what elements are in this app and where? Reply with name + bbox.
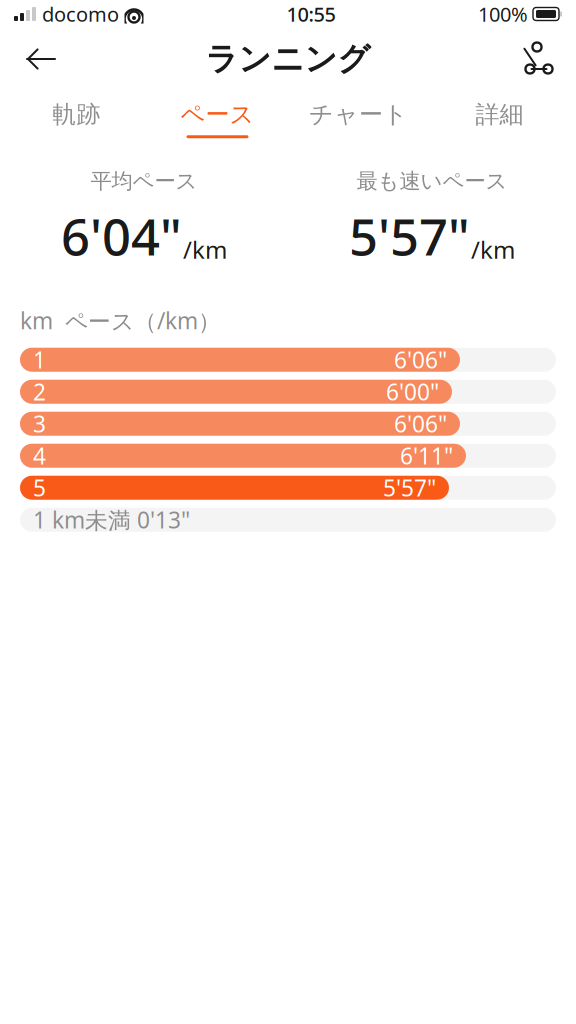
staticText: 4 xyxy=(33,441,46,471)
button[interactable]: 軌跡 xyxy=(6,94,147,144)
staticText: 1 xyxy=(33,345,46,375)
staticText: 詳細 xyxy=(475,100,523,129)
staticText: docomo xyxy=(42,1,119,27)
button[interactable]: 共有 xyxy=(508,32,562,86)
staticText: 3 xyxy=(33,409,46,439)
staticText: 2 xyxy=(33,377,46,407)
staticText: 6'06" xyxy=(394,409,447,439)
staticText: 6'04" xyxy=(61,202,182,269)
staticText: 6'11" xyxy=(400,441,453,471)
staticText: /km xyxy=(183,234,227,265)
staticText: 6'00" xyxy=(386,377,439,407)
button[interactable]: 戻る xyxy=(14,32,68,86)
staticText: 5'57" xyxy=(349,202,470,269)
staticText: 1 km未満 0'13" xyxy=(33,505,190,535)
staticText: km ペース（/km） xyxy=(20,305,221,336)
staticText: 6'06" xyxy=(394,345,447,375)
staticText: /km xyxy=(471,234,515,265)
staticText: チャート xyxy=(309,100,408,129)
staticText: 軌跡 xyxy=(52,100,100,129)
staticText: 最も速いペース xyxy=(356,168,507,194)
button[interactable]: 詳細 xyxy=(429,94,570,144)
staticText: ペース xyxy=(180,100,254,129)
staticText: 10:55 xyxy=(286,1,335,27)
staticText: ランニング xyxy=(205,39,370,79)
staticText: 5'57" xyxy=(383,473,436,503)
button[interactable]: ペース xyxy=(147,94,288,144)
button[interactable]: チャート xyxy=(288,94,429,144)
staticText: 平均ペース xyxy=(90,168,197,194)
staticText: 5 xyxy=(33,473,46,503)
staticText: 100% xyxy=(478,1,528,27)
